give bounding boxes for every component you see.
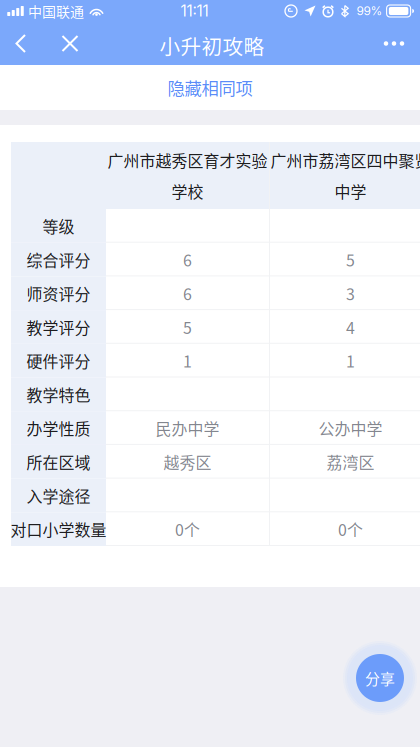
staticText: 隐藏相同项 <box>167 75 252 100</box>
button[interactable]: More <box>370 22 418 65</box>
staticText: 分享 <box>365 667 395 689</box>
button[interactable]: Back <box>1 22 48 65</box>
button[interactable]: Close <box>48 22 92 65</box>
staticText: 6 <box>183 248 192 271</box>
staticText: 教学评分 <box>26 315 90 338</box>
staticText: 1 <box>183 349 192 372</box>
staticText: 5 <box>346 248 355 271</box>
button[interactable]: 分享 <box>342 640 418 716</box>
staticText: 办学性质 <box>26 416 90 440</box>
staticText: 99% <box>357 4 383 18</box>
staticText: 对口小学数量 <box>10 518 106 541</box>
staticText: 硬件评分 <box>26 349 90 372</box>
staticText: 1 <box>346 349 355 372</box>
staticText: 广州市荔湾区四中聚贤 <box>270 148 420 171</box>
staticText: 教学特色 <box>26 383 90 406</box>
staticText: 3 <box>346 282 355 305</box>
staticText: 0个 <box>175 518 200 541</box>
staticText: 小升初攻略 <box>159 30 264 60</box>
button[interactable]: 隐藏相同项 <box>0 65 420 110</box>
staticText: 综合评分 <box>26 248 90 271</box>
staticText: 所在区域 <box>26 450 90 473</box>
staticText: 师资评分 <box>26 282 90 305</box>
staticText: 越秀区 <box>163 450 211 473</box>
staticText: 中国联通 <box>28 1 84 21</box>
staticText: 等级 <box>42 214 74 237</box>
staticText: 广州市越秀区育才实验 <box>107 148 267 171</box>
staticText: 6 <box>183 282 192 305</box>
staticText: 荔湾区 <box>326 450 374 473</box>
staticText: 11:11 <box>180 2 208 20</box>
staticText: 中学 <box>334 179 366 203</box>
staticText: 0个 <box>338 518 363 541</box>
staticText: 入学途径 <box>26 484 90 507</box>
staticText: 学校 <box>171 179 203 203</box>
staticText: 4 <box>346 315 355 338</box>
staticText: 公办中学 <box>318 416 382 440</box>
staticText: 民办中学 <box>155 416 219 440</box>
staticText: 5 <box>183 315 192 338</box>
